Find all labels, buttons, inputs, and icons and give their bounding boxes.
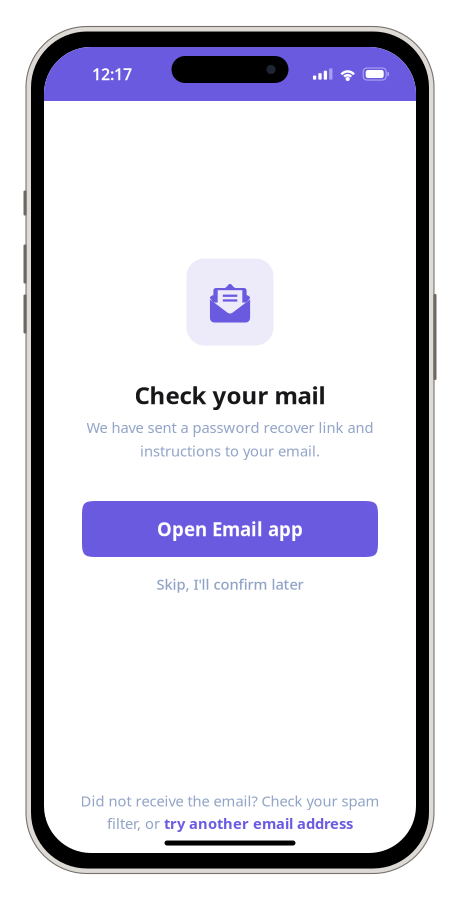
staticText: Did not receive the email? Check your sp…: [80, 791, 379, 810]
staticText: instructions to your email.: [140, 441, 320, 460]
button[interactable]: Skip, I'll confirm later: [110, 567, 350, 601]
button[interactable]: try another email address: [164, 813, 353, 833]
staticText: We have sent a password recover link and: [86, 417, 373, 437]
staticText: 12:17: [92, 63, 132, 85]
staticText: Open Email app: [157, 517, 303, 541]
staticText: Skip, I'll confirm later: [156, 574, 303, 594]
staticText: Check your mail: [134, 379, 325, 411]
button[interactable]: Open Email app: [82, 501, 378, 557]
staticText: filter, or: [107, 813, 160, 833]
staticText: try another email address: [164, 813, 353, 833]
